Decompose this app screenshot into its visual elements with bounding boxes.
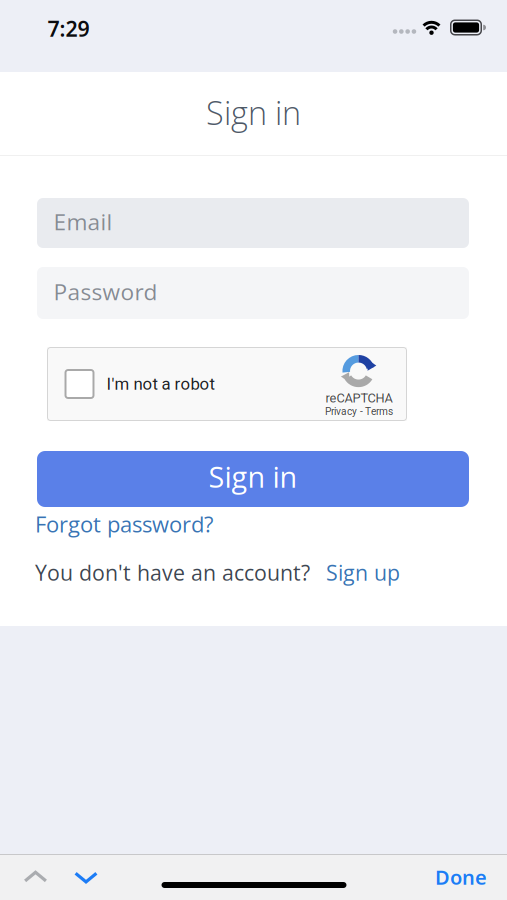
staticText: 7:29 — [47, 14, 89, 43]
staticText: Sign in — [206, 90, 301, 134]
staticText: Email — [53, 206, 112, 237]
staticText: You don't have an account? — [35, 558, 310, 587]
staticText: Privacy - Terms — [325, 406, 393, 417]
staticText: I'm not a robot — [106, 374, 214, 394]
staticText: Done — [435, 864, 487, 890]
staticText: Sign in — [208, 457, 297, 496]
staticText: Password — [53, 276, 157, 307]
staticText: Sign up — [326, 558, 400, 587]
staticText: reCAPTCHA — [325, 391, 392, 406]
staticText: Forgot password? — [35, 509, 213, 539]
